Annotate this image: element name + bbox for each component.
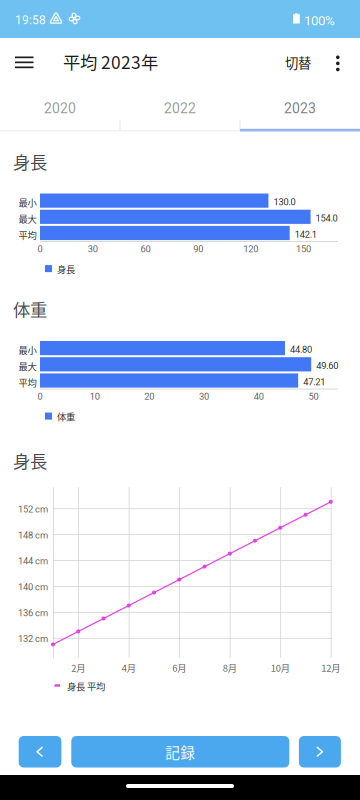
staticText: 144 cm <box>18 556 48 566</box>
staticText: 136 cm <box>18 607 48 618</box>
staticText: 2022 <box>164 100 196 117</box>
button[interactable]: 記録 <box>71 736 289 767</box>
staticText: 142.1 <box>295 229 317 240</box>
button[interactable]: 2020 <box>0 87 120 130</box>
staticText: 19:58 <box>15 13 46 27</box>
staticText: 10 <box>90 391 100 402</box>
staticText: 8月 <box>223 661 237 674</box>
staticText: 4月 <box>122 661 136 674</box>
staticText: 身長 <box>13 149 47 174</box>
button[interactable]: Previous period <box>19 736 61 767</box>
staticText: 130.0 <box>273 197 295 208</box>
button[interactable]: Next period <box>299 736 341 767</box>
staticText: 154.0 <box>316 213 338 224</box>
staticText: 12月 <box>321 661 340 674</box>
staticText: 切替 <box>285 53 311 72</box>
button[interactable]: 切替 <box>278 38 318 87</box>
staticText: 100% <box>304 13 335 29</box>
staticText: 身長 <box>13 448 47 473</box>
staticText: 平均 2023年 <box>63 49 158 74</box>
staticText: 148 cm <box>18 530 48 541</box>
staticText: 20 <box>144 391 154 402</box>
button[interactable]: Menu <box>0 38 48 87</box>
staticText: 90 <box>193 244 203 254</box>
staticText: 2020 <box>44 100 76 117</box>
staticText: 50 <box>308 391 318 402</box>
staticText: 30 <box>88 244 98 254</box>
staticText: 2月 <box>71 661 85 674</box>
staticText: 身長 平均 <box>67 679 105 693</box>
staticText: 記録 <box>165 741 195 762</box>
staticText: 最小 <box>18 343 36 357</box>
staticText: 2023 <box>284 100 316 117</box>
staticText: 44.80 <box>290 344 312 355</box>
staticText: 0 <box>37 391 42 402</box>
staticText: 10月 <box>271 661 290 674</box>
button[interactable]: 2023 <box>240 87 360 130</box>
staticText: 120 <box>243 244 258 254</box>
staticText: 152 cm <box>18 504 48 515</box>
staticText: 最大 <box>18 359 36 373</box>
staticText: 140 cm <box>18 582 48 592</box>
button[interactable]: More options <box>322 38 354 87</box>
staticText: 最小 <box>18 196 36 209</box>
staticText: 132 cm <box>18 633 48 644</box>
staticText: 60 <box>140 244 150 254</box>
staticText: 30 <box>199 391 209 402</box>
staticText: 49.60 <box>316 360 338 371</box>
staticText: 平均 <box>18 376 36 389</box>
staticText: 40 <box>254 391 264 402</box>
staticText: 身長 <box>57 262 75 276</box>
staticText: 47.21 <box>303 377 325 387</box>
staticText: 0 <box>37 244 42 254</box>
staticText: 150 <box>296 244 311 254</box>
staticText: 平均 <box>18 228 36 242</box>
button[interactable]: 2022 <box>120 87 240 130</box>
staticText: 体重 <box>57 410 75 423</box>
staticText: 6月 <box>172 661 186 674</box>
staticText: 最大 <box>18 212 36 225</box>
staticText: 体重 <box>13 296 47 322</box>
